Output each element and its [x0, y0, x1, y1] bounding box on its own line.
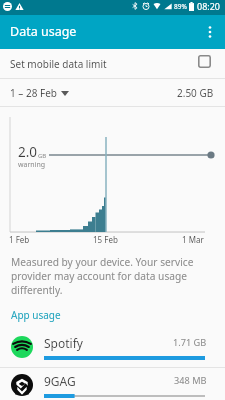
button[interactable]: Set mobile data limit [0, 49, 225, 79]
button[interactable]: More options [195, 17, 225, 47]
staticText: 2.0 [18, 143, 38, 161]
staticText: 348 MB [174, 374, 207, 387]
button[interactable]: Spotify [0, 329, 225, 367]
button[interactable]: App usage [0, 308, 225, 322]
staticText: 1 Feb [9, 234, 30, 245]
staticText: App usage [11, 308, 61, 322]
staticText: 1 – 28 Feb [10, 86, 57, 100]
staticText: 1 Mar [182, 234, 204, 245]
staticText: GB [38, 152, 47, 160]
staticText: provider may account for data usage [11, 269, 188, 283]
button[interactable]: 1 – 28 Feb [10, 86, 69, 100]
staticText: 9GAG [44, 373, 76, 389]
staticText: 15 Feb [93, 234, 118, 245]
staticText: 08:20 [197, 0, 221, 12]
staticText: 1.71 GB [173, 336, 207, 349]
staticText: Measured by your device. Your service [11, 255, 194, 269]
staticText: Set mobile data limit [10, 57, 107, 71]
staticText: 89% [174, 2, 187, 11]
staticText: warning [18, 160, 46, 170]
staticText: differently. [11, 283, 63, 297]
button[interactable]: 9GAG [0, 367, 225, 400]
staticText: 2.50 GB [177, 86, 214, 100]
staticText: Spotify [44, 335, 83, 351]
staticText: Data usage [10, 23, 77, 40]
